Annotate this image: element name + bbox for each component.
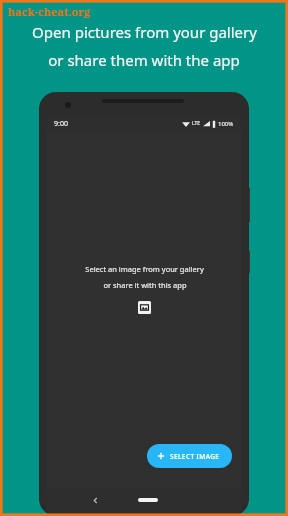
staticText: LTE [192, 120, 201, 127]
staticText: 9:00 [54, 119, 68, 129]
staticText: or share them with the app [48, 50, 240, 70]
staticText: or share it with this app [103, 280, 187, 290]
staticText: SELECT IMAGE [170, 452, 220, 461]
button[interactable]: Home [138, 498, 158, 502]
staticText: Open pictures from your gallery [32, 22, 257, 42]
staticText: 100% [218, 120, 234, 128]
staticText: Select an image from your gallery [85, 264, 204, 274]
staticText: hack-cheat.org [8, 4, 91, 19]
button[interactable]: Back [88, 493, 102, 507]
button[interactable]: SELECT IMAGE [147, 444, 232, 468]
